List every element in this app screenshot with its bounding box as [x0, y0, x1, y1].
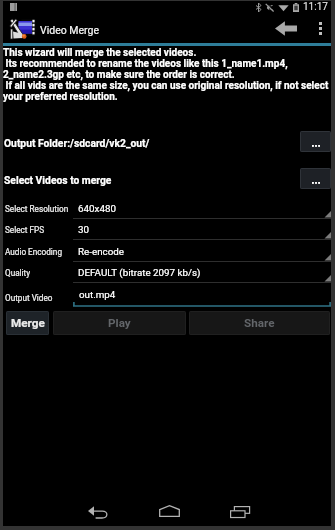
button[interactable]: Home: [153, 498, 185, 524]
staticText: Re-encode: [78, 246, 124, 257]
button[interactable]: Browse: [300, 168, 331, 189]
staticText: Output Video: [5, 293, 53, 303]
button[interactable]: Back: [265, 13, 307, 43]
staticText: Video Merge: [40, 24, 99, 36]
staticText: 2_name2.3gp etc, to make sure the order …: [3, 69, 235, 81]
staticText: DEFAULT (bitrate 2097 kb/s): [78, 267, 201, 278]
staticText: your preferred resolution.: [3, 91, 118, 103]
staticText: Merge: [11, 316, 45, 330]
button[interactable]: out.mp4: [73, 282, 331, 307]
staticText: Output Folder:/sdcard/vk2_out/: [4, 137, 150, 149]
button[interactable]: Recent apps: [224, 499, 256, 525]
staticText: Audio Encoding: [5, 247, 62, 257]
button[interactable]: Browse: [300, 131, 331, 152]
staticText: out.mp4: [79, 289, 116, 300]
staticText: 640x480: [78, 203, 116, 214]
button[interactable]: Back: [82, 499, 114, 525]
button[interactable]: Merge: [6, 311, 49, 335]
button[interactable]: More options: [309, 13, 331, 43]
staticText: 11:17: [303, 1, 328, 13]
staticText: Select Resolution: [5, 204, 69, 214]
button[interactable]: Audio Encoding: [3, 241, 331, 263]
button[interactable]: Play: [53, 311, 186, 335]
staticText: Share: [244, 316, 275, 330]
button[interactable]: Select FPS: [3, 219, 331, 241]
button[interactable]: Share: [189, 311, 330, 335]
staticText: Select Videos to merge: [4, 174, 112, 186]
button[interactable]: Select Resolution: [3, 198, 331, 220]
button[interactable]: Quality: [3, 262, 331, 284]
staticText: Play: [108, 316, 131, 330]
staticText: Its recommended to rename the videos lik…: [3, 58, 288, 70]
staticText: If all vids are the same size, you can u…: [3, 80, 329, 92]
staticText: This wizard will merge the selected vide…: [3, 47, 197, 59]
staticText: 30: [78, 224, 90, 235]
staticText: Quality: [5, 268, 31, 278]
staticText: Select FPS: [5, 225, 45, 235]
